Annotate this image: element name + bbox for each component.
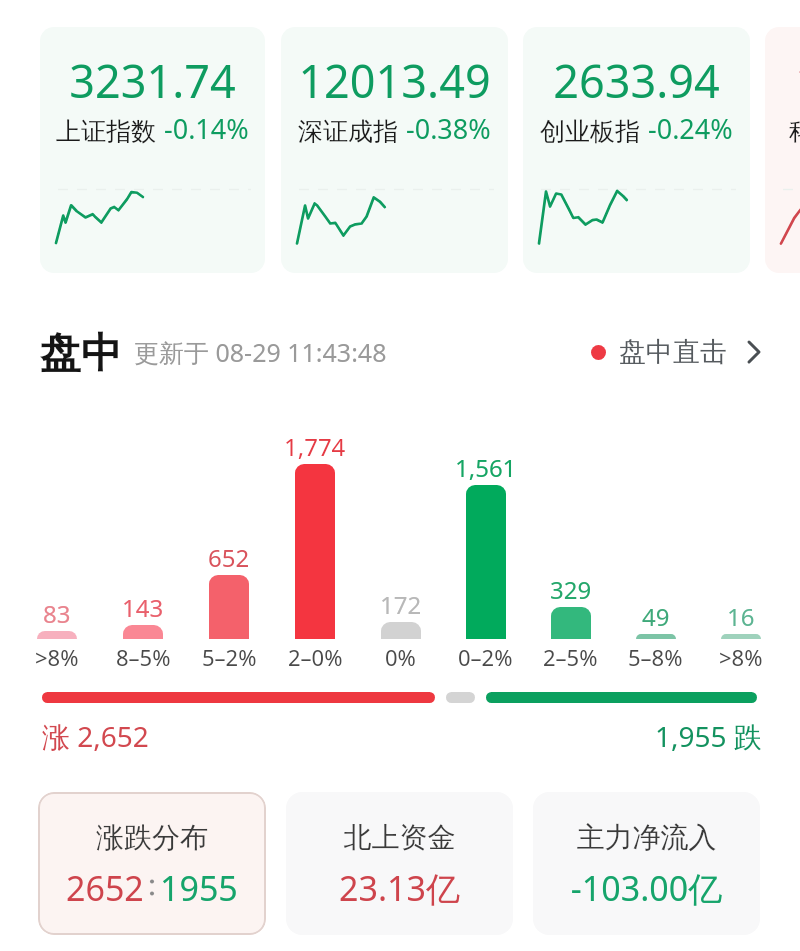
staticText: 2652 (66, 865, 144, 911)
staticText: 1,955 跌 (655, 717, 762, 755)
staticText: 涨 2,652 (42, 717, 149, 755)
staticText: 0–2% (458, 642, 513, 672)
staticText: 16 (727, 600, 755, 633)
button[interactable]: 2633.94 (523, 27, 750, 273)
staticText: 2633.94 (523, 50, 750, 111)
button[interactable]: 1,774 (272, 430, 358, 672)
staticText: 172 (380, 588, 422, 621)
staticText: -0.38% (406, 110, 491, 147)
staticText: 143 (122, 591, 164, 624)
staticText: 上证指数 (56, 116, 156, 147)
button[interactable]: 16 (698, 600, 783, 672)
staticText: 1,774 (284, 430, 346, 463)
button[interactable]: 329 (528, 573, 613, 672)
staticText: 盘中直击 (619, 335, 727, 369)
staticText: -103.00亿 (533, 865, 760, 911)
button[interactable]: 83 (14, 597, 100, 672)
button[interactable]: 3231.74 (40, 27, 265, 273)
staticText: 0% (385, 642, 416, 672)
staticText: 12013.49 (281, 50, 508, 111)
button[interactable]: 143 (100, 591, 186, 672)
button[interactable]: 主力净流入 (533, 792, 760, 935)
staticText: 创业板指 (540, 116, 640, 147)
button[interactable]: 49 (613, 600, 698, 672)
staticText: >8% (719, 642, 763, 672)
staticText: 涨跌分布 (38, 820, 266, 855)
staticText: 23.13亿 (286, 865, 513, 911)
button[interactable]: 652 (186, 541, 272, 672)
staticText: 329 (550, 573, 592, 606)
button[interactable]: 172 (358, 588, 443, 672)
staticText: 更新于 08-29 11:43:48 (134, 335, 387, 369)
staticText: 5–8% (628, 642, 683, 672)
staticText: 深证成指 (298, 116, 398, 147)
staticText: 49 (642, 600, 670, 633)
staticText: 1955 (160, 865, 238, 911)
staticText: 2–0% (288, 642, 343, 672)
staticText: -0.14% (164, 110, 249, 147)
staticText: 主力净流入 (533, 820, 760, 855)
staticText: 3231.74 (40, 50, 265, 111)
staticText: 5–2% (202, 642, 257, 672)
button[interactable]: 1033.20 (765, 27, 800, 273)
button[interactable]: 涨跌分布 (38, 792, 266, 935)
staticText: >8% (35, 642, 79, 672)
staticText: 8–5% (116, 642, 171, 672)
button[interactable]: 1,561 (443, 451, 528, 672)
staticText: 盘中 (40, 328, 122, 376)
other: More (748, 341, 760, 363)
staticText: 北上资金 (286, 820, 513, 855)
staticText: 652 (208, 541, 250, 574)
staticText: 1,561 (455, 451, 517, 484)
staticText: 2–5% (543, 642, 598, 672)
staticText: -0.24% (648, 110, 733, 147)
button[interactable]: 12013.49 (281, 27, 508, 273)
staticText: 83 (43, 597, 71, 630)
button[interactable]: 北上资金 (286, 792, 513, 935)
button[interactable]: 盘中直击 (591, 335, 760, 369)
staticText: 科创50 (789, 113, 800, 147)
